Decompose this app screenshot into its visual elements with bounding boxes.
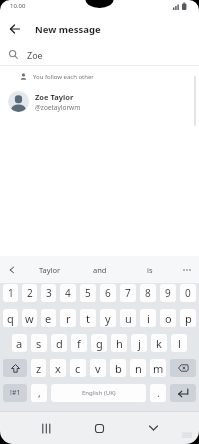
- staticText: 5: [85, 286, 91, 300]
- staticText: e: [45, 311, 52, 326]
- staticText: 3: [46, 286, 52, 300]
- button[interactable]: g: [91, 334, 107, 352]
- staticText: Taylor: [39, 265, 61, 275]
- staticText: 2: [27, 286, 33, 300]
- button[interactable]: w: [22, 309, 37, 327]
- staticText: 0: [185, 286, 191, 300]
- button[interactable]: Taylor: [24, 256, 75, 283]
- staticText: 10.00: [10, 2, 26, 10]
- staticText: w: [25, 311, 34, 326]
- staticText: u: [125, 311, 132, 326]
- button[interactable]: Zoe Taylor: [0, 87, 199, 116]
- button[interactable]: z: [31, 359, 46, 377]
- staticText: r: [66, 311, 71, 326]
- staticText: 8: [145, 286, 151, 300]
- button[interactable]: k: [151, 334, 167, 352]
- button[interactable]: c: [70, 359, 86, 377]
- staticText: 6: [105, 286, 111, 300]
- button[interactable]: New message: [0, 14, 199, 44]
- staticText: h: [116, 336, 123, 351]
- button[interactable]: x: [50, 359, 66, 377]
- button[interactable]: [139, 414, 167, 442]
- staticText: .: [157, 386, 160, 400]
- staticText: English (UK): [82, 389, 116, 397]
- button[interactable]: 0: [180, 284, 196, 302]
- button[interactable]: [0, 256, 24, 283]
- button[interactable]: e: [41, 309, 56, 327]
- staticText: p: [185, 311, 192, 326]
- staticText: b: [115, 361, 122, 376]
- button[interactable]: [32, 414, 60, 442]
- button[interactable]: .: [150, 384, 166, 402]
- staticText: l: [178, 336, 181, 351]
- staticText: 1: [8, 286, 14, 300]
- button[interactable]: y: [100, 309, 116, 327]
- staticText: i: [147, 311, 150, 326]
- button[interactable]: r: [60, 309, 76, 327]
- button[interactable]: d: [51, 334, 67, 352]
- button[interactable]: [0, 14, 30, 44]
- staticText: k: [156, 336, 162, 351]
- button[interactable]: f: [71, 334, 87, 352]
- staticText: f: [77, 336, 81, 351]
- button[interactable]: ,: [31, 384, 47, 402]
- button[interactable]: n: [130, 359, 146, 377]
- button[interactable]: t: [80, 309, 96, 327]
- button[interactable]: [3, 359, 27, 377]
- button[interactable]: !#1: [3, 384, 27, 402]
- button[interactable]: p: [180, 309, 196, 327]
- button[interactable]: English (UK): [51, 384, 146, 402]
- staticText: j: [138, 336, 141, 351]
- button[interactable]: i: [140, 309, 156, 327]
- staticText: @zoetaylorwm: [35, 103, 81, 112]
- button[interactable]: 8: [140, 284, 156, 302]
- button[interactable]: [85, 414, 113, 442]
- staticText: is: [147, 265, 153, 275]
- staticText: Zoe Taylor: [35, 92, 74, 102]
- button[interactable]: 7: [120, 284, 136, 302]
- staticText: t: [86, 311, 90, 326]
- staticText: and: [93, 265, 107, 275]
- staticText: 9: [165, 286, 171, 300]
- button[interactable]: is: [125, 256, 175, 283]
- button[interactable]: 1: [3, 284, 18, 302]
- button[interactable]: u: [120, 309, 136, 327]
- staticText: d: [56, 336, 63, 351]
- button[interactable]: j: [131, 334, 147, 352]
- button[interactable]: 5: [80, 284, 96, 302]
- button[interactable]: You follow each other: [0, 66, 199, 87]
- staticText: x: [55, 361, 61, 376]
- button[interactable]: q: [3, 309, 18, 327]
- button[interactable]: [170, 359, 196, 377]
- staticText: m: [153, 361, 164, 376]
- button[interactable]: o: [160, 309, 176, 327]
- staticText: o: [165, 311, 172, 326]
- button[interactable]: [175, 256, 199, 283]
- button[interactable]: 3: [41, 284, 56, 302]
- button[interactable]: 2: [22, 284, 37, 302]
- staticText: v: [95, 361, 101, 376]
- button[interactable]: 9: [160, 284, 176, 302]
- button[interactable]: s: [31, 334, 47, 352]
- button[interactable]: 6: [100, 284, 116, 302]
- staticText: s: [36, 336, 42, 351]
- button[interactable]: 4: [60, 284, 76, 302]
- staticText: Zoe: [27, 49, 43, 61]
- staticText: g: [96, 336, 103, 351]
- staticText: a: [16, 336, 23, 351]
- staticText: 4: [65, 286, 71, 300]
- button[interactable]: and: [75, 256, 125, 283]
- button[interactable]: m: [150, 359, 166, 377]
- staticText: You follow each other: [33, 73, 94, 81]
- button[interactable]: h: [111, 334, 127, 352]
- staticText: !#1: [10, 388, 21, 398]
- button[interactable]: b: [110, 359, 126, 377]
- button[interactable]: Zoe: [0, 44, 199, 66]
- button[interactable]: v: [90, 359, 106, 377]
- button[interactable]: [170, 384, 196, 402]
- staticText: n: [135, 361, 142, 376]
- staticText: q: [7, 311, 14, 326]
- staticText: c: [75, 361, 81, 376]
- button[interactable]: a: [12, 334, 27, 352]
- button[interactable]: l: [171, 334, 187, 352]
